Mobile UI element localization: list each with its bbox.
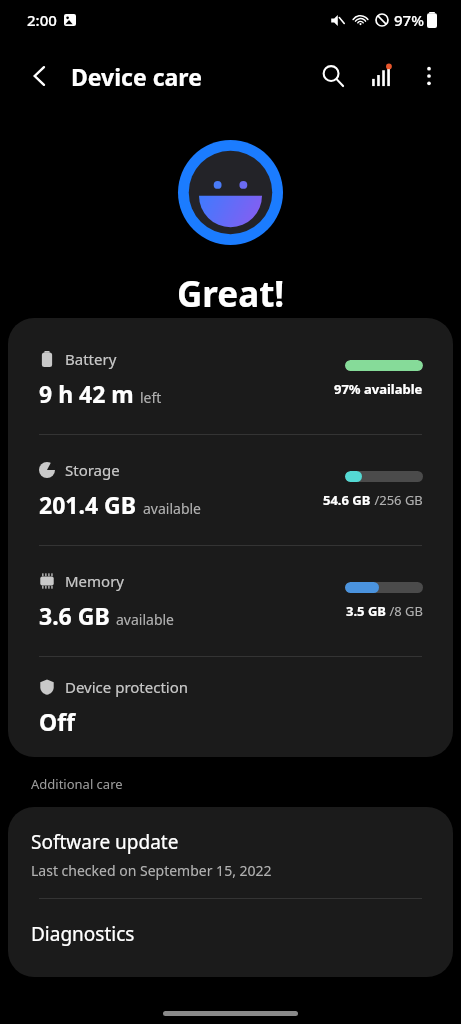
button[interactable]: Software update — [8, 807, 453, 898]
staticText: Device protection — [65, 677, 189, 697]
staticText: /256 GB — [371, 491, 423, 509]
staticText: Software update — [31, 829, 179, 855]
staticText: 97% available — [334, 380, 423, 398]
staticText: Storage — [65, 460, 120, 480]
button[interactable]: Back — [16, 52, 64, 100]
button[interactable]: Diagnostics — [8, 899, 453, 977]
button[interactable]: Usage statistics — [357, 52, 405, 100]
button[interactable]: Memory — [8, 546, 453, 656]
staticText: 2:00 — [27, 10, 57, 30]
staticText: available — [116, 610, 175, 629]
staticText: 97% — [394, 10, 424, 30]
staticText: 54.6 GB — [323, 491, 371, 509]
staticText: 3.6 GB — [39, 600, 110, 631]
button[interactable]: Storage — [8, 435, 453, 545]
staticText: 9 h 42 m — [39, 378, 134, 409]
button[interactable]: Battery — [8, 324, 453, 434]
staticText: available — [143, 499, 202, 518]
staticText: Last checked on September 15, 2022 — [31, 861, 272, 880]
button[interactable]: Device protection — [8, 657, 453, 757]
staticText: Additional care — [31, 775, 123, 793]
staticText: /8 GB — [386, 602, 423, 620]
staticText: 3.5 GB — [346, 602, 386, 620]
button[interactable]: Search — [309, 52, 357, 100]
staticText: Memory — [65, 571, 125, 591]
staticText: Diagnostics — [31, 921, 135, 947]
staticText: Off — [39, 706, 75, 737]
staticText: left — [140, 388, 162, 407]
staticText: 201.4 GB — [39, 489, 137, 520]
staticText: Device care — [71, 61, 202, 92]
button[interactable]: More options — [405, 52, 453, 100]
staticText: Battery — [65, 349, 117, 369]
staticText: Great! — [177, 270, 285, 318]
